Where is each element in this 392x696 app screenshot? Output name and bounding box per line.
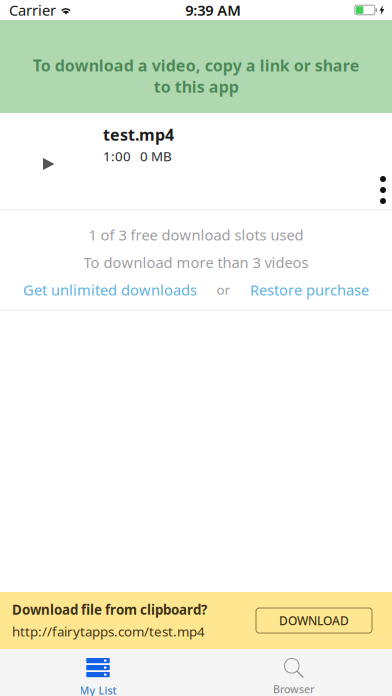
staticText: DOWNLOAD <box>279 612 349 628</box>
staticText: Download file from clipboard? <box>12 601 207 618</box>
staticText: 1 of 3 free download slots used <box>88 225 303 244</box>
button[interactable]: DOWNLOAD <box>256 608 372 633</box>
button[interactable]: Restore purchase <box>244 276 375 303</box>
staticText: http://fairytapps.com/test.mp4 <box>12 622 205 640</box>
button[interactable]: Get unlimited downloads <box>17 276 203 303</box>
staticText: or <box>216 281 230 298</box>
staticText: To download a video, copy a link or shar… <box>32 55 359 97</box>
staticText: Get unlimited downloads <box>23 280 197 299</box>
staticText: test.mp4 <box>103 124 174 145</box>
staticText: Restore purchase <box>250 280 369 299</box>
staticText: 9:39 AM <box>185 0 241 20</box>
button[interactable]: Browser <box>196 658 392 696</box>
staticText: 1:00 0 MB <box>103 147 172 165</box>
button[interactable]: test.mp4 <box>0 113 392 209</box>
staticText: Browser <box>273 682 315 696</box>
staticText: Carrier <box>9 0 56 20</box>
button[interactable]: My List <box>0 658 196 696</box>
staticText: My List <box>79 683 116 696</box>
staticText: To download more than 3 videos <box>83 252 308 272</box>
